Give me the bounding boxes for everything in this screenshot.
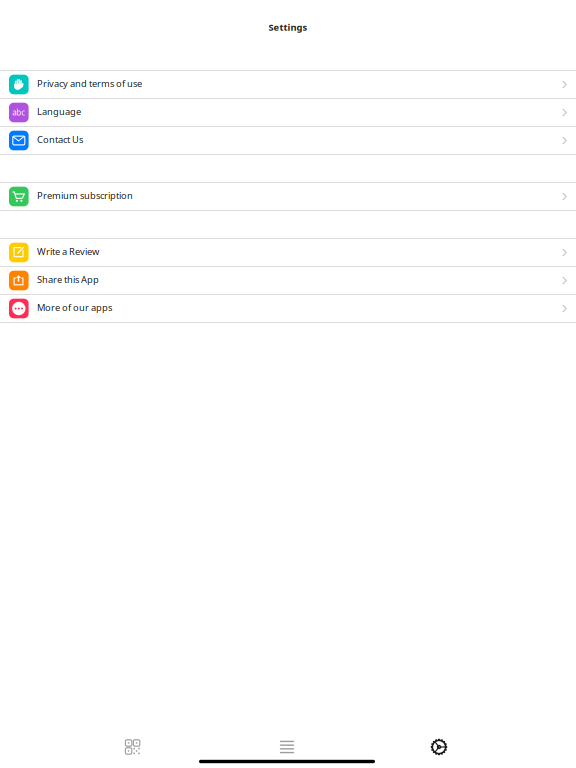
button[interactable]: Write a Review — [0, 239, 576, 267]
staticText: More of our apps — [37, 301, 112, 313]
staticText: Write a Review — [37, 245, 99, 257]
staticText: abc — [12, 107, 25, 118]
staticText: Premium subscription — [37, 189, 133, 201]
staticText: Privacy and terms of use — [37, 77, 142, 89]
button[interactable]: More of our apps — [0, 295, 576, 323]
button[interactable]: Settings — [411, 725, 467, 768]
button[interactable]: Contact Us — [0, 127, 576, 155]
staticText: Contact Us — [37, 133, 83, 145]
staticText: Share this App — [37, 273, 99, 285]
button[interactable]: Share this App — [0, 267, 576, 295]
button[interactable]: Scan QR code — [105, 725, 161, 768]
button[interactable]: List — [259, 725, 315, 768]
button[interactable]: Privacy and terms of use — [0, 71, 576, 99]
staticText: Language — [37, 105, 81, 117]
button[interactable]: abc — [0, 99, 576, 127]
staticText: Settings — [268, 21, 307, 33]
button[interactable]: Premium subscription — [0, 183, 576, 211]
